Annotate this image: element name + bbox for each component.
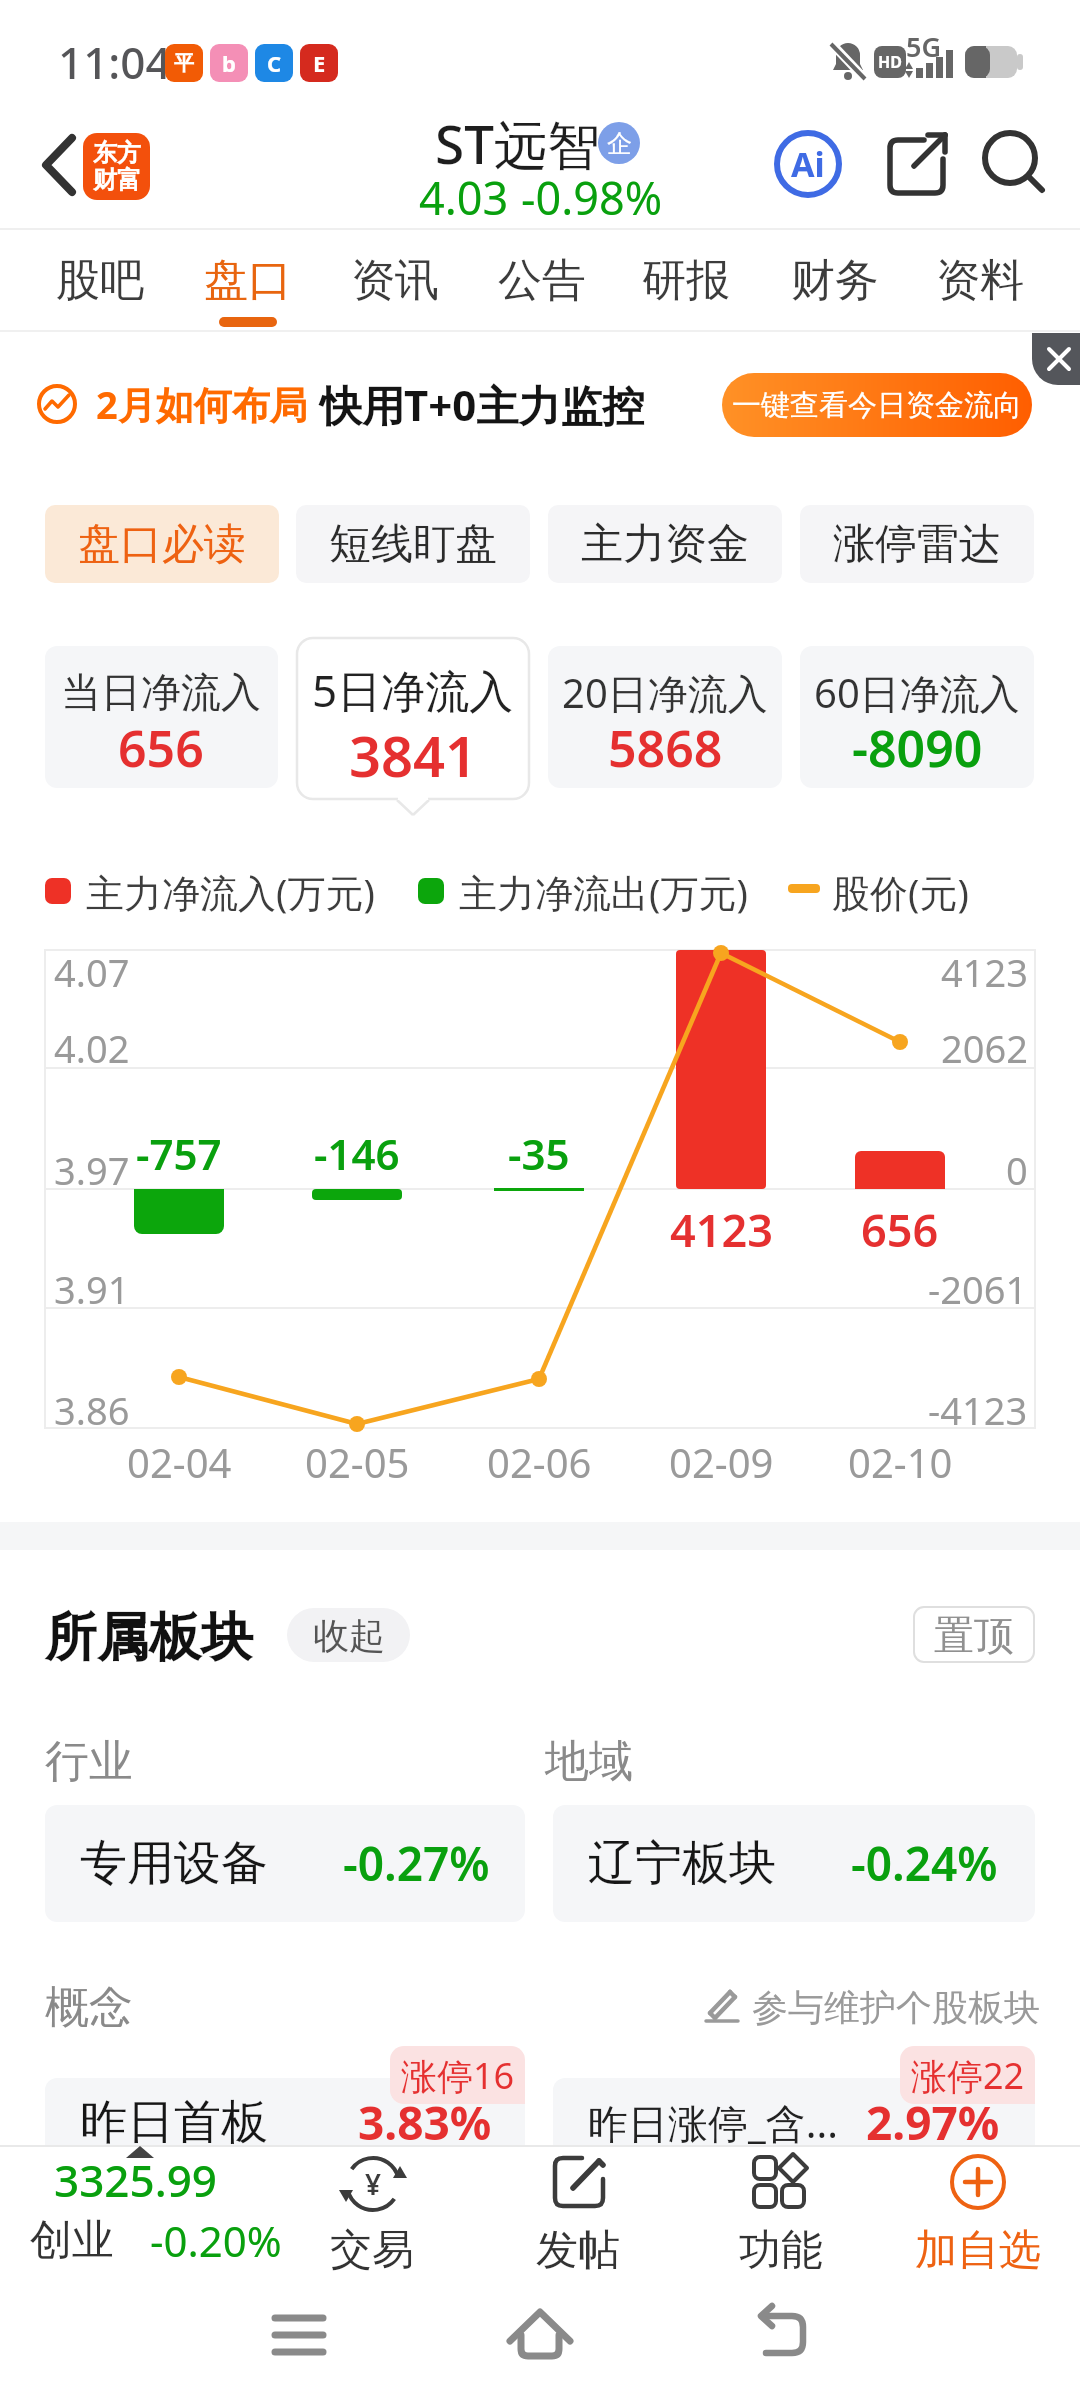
staticText: 股价(元) [832, 866, 969, 918]
staticText: b [222, 48, 236, 78]
staticText: 东方 财富 [93, 138, 141, 195]
staticText: 平 [174, 51, 194, 76]
staticText: 昨日涨停_含... [588, 2095, 838, 2150]
button[interactable]: 财务 [775, 240, 895, 320]
staticText: 公告 [498, 253, 586, 308]
button[interactable]: 主力资金 [548, 505, 782, 583]
staticText: 创业 [30, 2214, 114, 2267]
button[interactable] [296, 637, 530, 800]
button[interactable] [20, 2148, 290, 2273]
button[interactable]: 资讯 [335, 240, 455, 320]
button[interactable] [742, 2298, 817, 2373]
button[interactable]: 盘口 [188, 240, 308, 320]
staticText: 60日净流入 [814, 665, 1020, 720]
staticText: -146 [314, 1125, 400, 1182]
staticText: 研报 [642, 253, 730, 308]
staticText: 交易 [330, 2224, 414, 2277]
staticText: 4.02 [54, 1022, 130, 1074]
staticText: 加自选 [915, 2224, 1041, 2277]
button[interactable] [553, 2078, 1035, 2198]
staticText: -0.98% [521, 167, 663, 228]
staticText: 股吧 [56, 253, 144, 308]
staticText: 专用设备 [80, 1834, 268, 1893]
button[interactable]: 东方 财富 [83, 133, 150, 200]
button[interactable]: ¥ [310, 2148, 435, 2273]
staticText: -757 [136, 1125, 222, 1182]
button[interactable] [800, 646, 1034, 788]
staticText: 短线盯盘 [329, 518, 497, 571]
staticText: -0.20% [150, 2212, 282, 2269]
staticText: 02-10 [848, 1435, 953, 1489]
staticText: 2.97% [866, 2091, 1000, 2154]
staticText: 当日净流入 [61, 667, 261, 717]
staticText: 企 [607, 128, 632, 159]
staticText: -2061 [928, 1263, 1028, 1315]
staticText: 3.91 [54, 1263, 130, 1315]
button[interactable] [262, 2298, 337, 2373]
staticText: 11:04 [58, 32, 171, 92]
staticText: 02-04 [127, 1435, 232, 1489]
staticText: 昨日首板 [80, 2093, 268, 2152]
button[interactable] [916, 2148, 1041, 2273]
staticText: 收起 [313, 1613, 385, 1658]
staticText: 3.97 [54, 1144, 130, 1196]
button[interactable] [886, 133, 950, 197]
staticText: 功能 [739, 2224, 823, 2277]
staticText: 盘口必读 [78, 518, 246, 571]
button[interactable] [20, 130, 90, 200]
button[interactable] [515, 2148, 640, 2273]
staticText: 2月如何布局 [96, 378, 308, 430]
staticText: 4123 [670, 1199, 773, 1260]
button[interactable]: 收起 [287, 1608, 410, 1662]
staticText: 财务 [791, 253, 879, 308]
staticText: 盘口 [204, 253, 292, 308]
button[interactable] [45, 2078, 525, 2198]
staticText: -35 [508, 1125, 570, 1182]
button[interactable] [980, 128, 1050, 198]
staticText: ¥ [365, 2165, 382, 2203]
button[interactable] [45, 1805, 525, 1922]
staticText: ST远智 [435, 107, 600, 179]
staticText: 快用T+0主力监控 [320, 376, 645, 433]
button[interactable] [548, 646, 782, 788]
button[interactable]: 盘口必读 [45, 505, 279, 583]
button[interactable]: 研报 [626, 240, 746, 320]
staticText: 656 [118, 714, 204, 782]
staticText: 3.86 [54, 1384, 130, 1436]
staticText: 656 [861, 1199, 939, 1260]
staticText: 发帖 [536, 2224, 620, 2277]
staticText: 主力净流出(万元) [459, 866, 748, 918]
staticText: 2062 [941, 1022, 1028, 1074]
staticText: 资讯 [351, 253, 439, 308]
staticText: 主力资金 [581, 518, 749, 571]
button[interactable] [1032, 333, 1080, 385]
button[interactable]: 置顶 [913, 1606, 1035, 1663]
staticText: 3325.99 [54, 2150, 217, 2210]
staticText: -4123 [928, 1384, 1028, 1436]
staticText: -0.27% [343, 1832, 490, 1895]
staticText: -8090 [852, 714, 983, 782]
staticText: 4.03 [419, 167, 509, 228]
button[interactable]: 资料 [920, 240, 1040, 320]
staticText: 资料 [936, 253, 1024, 308]
button[interactable] [503, 2298, 578, 2373]
staticText: 一键查看今日资金流向 [732, 387, 1022, 424]
button[interactable]: 短线盯盘 [296, 505, 530, 583]
button[interactable] [718, 2148, 843, 2273]
staticText: -0.24% [851, 1832, 998, 1895]
button[interactable] [553, 1805, 1035, 1922]
button[interactable] [45, 646, 278, 788]
button[interactable]: Ai [772, 128, 844, 200]
button[interactable]: 公告 [482, 240, 602, 320]
staticText: 概念 [45, 1980, 133, 2035]
staticText: 3841 [349, 717, 478, 793]
button[interactable]: 一键查看今日资金流向 [722, 373, 1032, 437]
staticText: 20日净流入 [562, 665, 768, 720]
staticText: 辽宁板块 [588, 1834, 776, 1893]
button[interactable]: 股吧 [40, 240, 160, 320]
staticText: 涨停22 [911, 2051, 1025, 2100]
staticText: 行业 [45, 1734, 133, 1789]
staticText: 5868 [608, 714, 723, 782]
staticText: 3.83% [358, 2091, 492, 2154]
button[interactable]: 涨停雷达 [800, 505, 1034, 583]
